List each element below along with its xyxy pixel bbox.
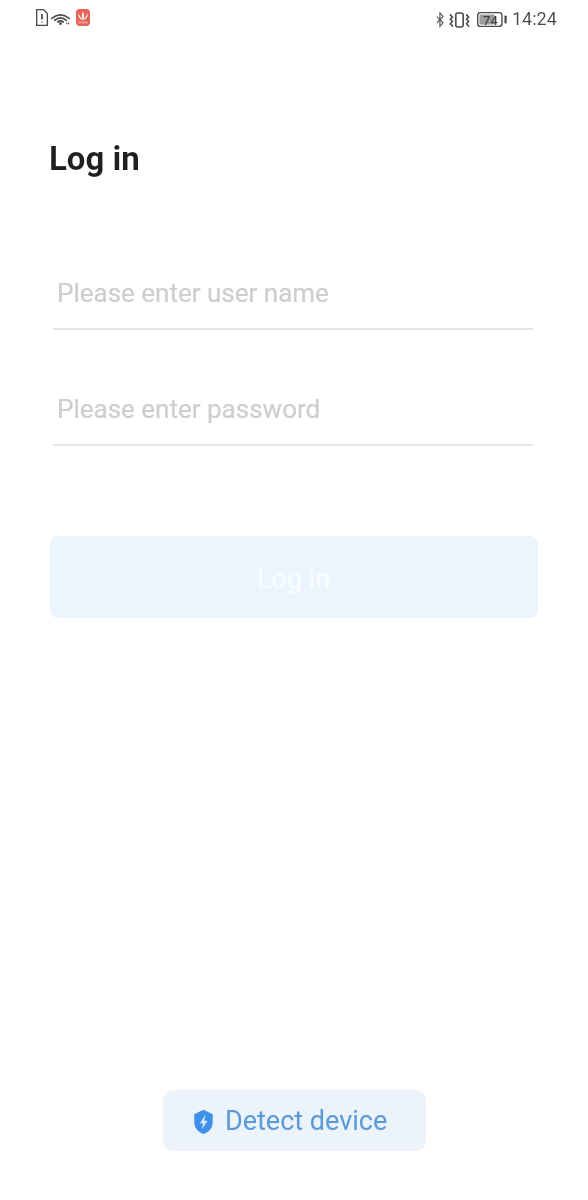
- staticText: 14:24: [512, 8, 557, 29]
- staticText: Please enter user name: [57, 278, 329, 308]
- button[interactable]: User name input field: [53, 266, 533, 332]
- staticText: Log in: [49, 139, 140, 178]
- staticText: 74: [483, 13, 498, 28]
- staticText: Detect device: [225, 1105, 388, 1137]
- button[interactable]: Password input field: [53, 382, 533, 448]
- button[interactable]: Detect device: [163, 1090, 426, 1151]
- staticText: Please enter password: [57, 394, 321, 424]
- staticText: Log in: [257, 563, 331, 595]
